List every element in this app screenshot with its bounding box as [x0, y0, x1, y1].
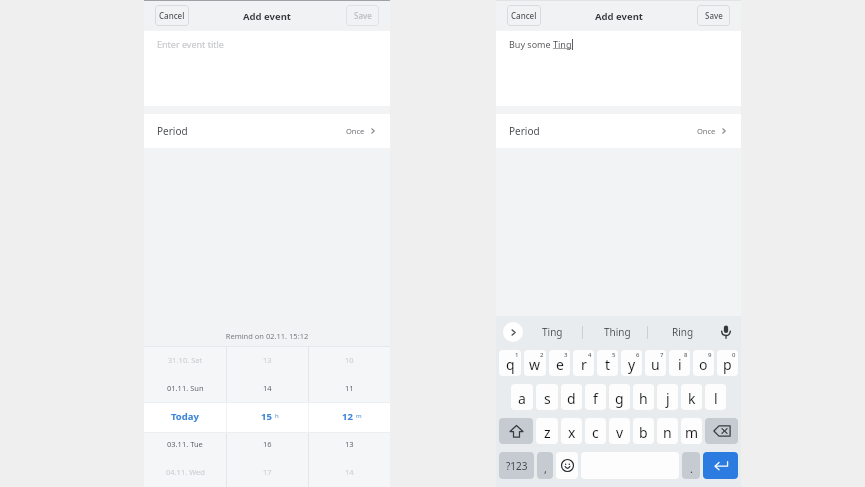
staticText: y: [628, 355, 636, 374]
button[interactable]: l: [705, 384, 726, 410]
button[interactable]: Ting: [520, 316, 585, 348]
button[interactable]: y: [621, 350, 642, 376]
button[interactable]: p: [717, 350, 738, 376]
button[interactable]: u: [645, 350, 666, 376]
staticText: i: [678, 355, 682, 374]
button[interactable]: m: [681, 418, 702, 444]
button[interactable]: Ring: [650, 316, 715, 348]
staticText: Once: [346, 126, 365, 136]
staticText: d: [567, 389, 576, 408]
staticText: Buy some: [509, 38, 553, 50]
staticText: Period: [509, 124, 540, 138]
button[interactable]: 16: [226, 430, 308, 458]
staticText: e: [556, 355, 564, 374]
button[interactable]: Shift: [499, 418, 533, 444]
button[interactable]: 13: [226, 346, 308, 374]
button[interactable]: 01.11. Sun: [144, 374, 226, 402]
button[interactable]: w: [524, 350, 546, 376]
staticText: 2: [540, 351, 544, 359]
button[interactable]: v: [609, 418, 630, 444]
button[interactable]: x: [561, 418, 582, 444]
staticText: 14: [345, 467, 354, 477]
staticText: p: [723, 355, 732, 374]
button[interactable]: 10: [308, 346, 390, 374]
staticText: Ting: [553, 38, 572, 50]
staticText: 10: [345, 355, 354, 365]
button[interactable]: Thing: [585, 316, 650, 348]
button[interactable]: Cancel: [507, 5, 541, 26]
staticText: u: [651, 355, 660, 374]
button[interactable]: j: [657, 384, 678, 410]
button[interactable]: z: [536, 418, 558, 444]
button[interactable]: q: [499, 350, 521, 376]
button[interactable]: Save: [346, 5, 379, 26]
staticText: ?123: [506, 459, 528, 473]
button[interactable]: Emoji: [556, 452, 578, 479]
staticText: Today: [171, 410, 199, 423]
staticText: x: [568, 423, 576, 442]
staticText: w: [529, 355, 541, 374]
button[interactable]: r: [573, 350, 594, 376]
button[interactable]: Cancel: [155, 5, 189, 26]
button[interactable]: Period: [496, 114, 741, 148]
staticText: Thing: [604, 325, 631, 339]
button[interactable]: Save: [697, 5, 730, 26]
button[interactable]: g: [609, 384, 630, 410]
staticText: Add event: [243, 10, 291, 23]
staticText: f: [593, 389, 598, 408]
button[interactable]: Period: [144, 114, 390, 148]
staticText: 6: [636, 351, 640, 359]
button[interactable]: i: [669, 350, 690, 376]
button[interactable]: d: [561, 384, 582, 410]
button[interactable]: f: [585, 384, 606, 410]
staticText: ,: [544, 461, 547, 476]
staticText: Period: [157, 124, 188, 138]
button[interactable]: 15: [226, 402, 308, 430]
button[interactable]: t: [597, 350, 618, 376]
staticText: 16: [263, 439, 272, 449]
button[interactable]: e: [549, 350, 570, 376]
staticText: 3: [564, 351, 568, 359]
button[interactable]: Period: [682, 452, 700, 479]
button[interactable]: c: [585, 418, 606, 444]
staticText: 13: [345, 439, 354, 449]
staticText: 03.11. Tue: [167, 439, 203, 449]
button[interactable]: 14: [226, 374, 308, 402]
button[interactable]: Voice input: [717, 323, 735, 341]
button[interactable]: a: [511, 384, 533, 410]
button[interactable]: 13: [308, 430, 390, 458]
staticText: 14: [263, 383, 272, 393]
button[interactable]: h: [633, 384, 654, 410]
button[interactable]: Today: [144, 402, 226, 430]
button[interactable]: 31.10. Sat: [144, 346, 226, 374]
button[interactable]: ?123: [499, 452, 534, 479]
staticText: h: [275, 412, 279, 420]
button[interactable]: 03.11. Tue: [144, 430, 226, 458]
staticText: j: [666, 389, 670, 408]
button[interactable]: 04.11. Wed: [144, 458, 226, 486]
button[interactable]: Backspace: [705, 418, 738, 444]
staticText: 4: [588, 351, 592, 359]
staticText: 11: [345, 383, 354, 393]
button[interactable]: Comma: [537, 452, 553, 479]
button[interactable]: k: [681, 384, 702, 410]
button[interactable]: 11: [308, 374, 390, 402]
staticText: v: [616, 423, 624, 442]
button[interactable]: s: [536, 384, 558, 410]
staticText: g: [615, 389, 624, 408]
staticText: l: [714, 389, 718, 408]
staticText: o: [699, 355, 708, 374]
staticText: Ting: [542, 325, 563, 339]
staticText: q: [506, 355, 515, 374]
button[interactable]: n: [657, 418, 678, 444]
staticText: 7: [660, 351, 664, 359]
button[interactable]: b: [633, 418, 654, 444]
button[interactable]: 12: [308, 402, 390, 430]
button[interactable]: Enter: [703, 452, 738, 479]
button[interactable]: Expand suggestions: [503, 322, 523, 342]
button[interactable]: o: [693, 350, 714, 376]
staticText: k: [688, 389, 696, 408]
